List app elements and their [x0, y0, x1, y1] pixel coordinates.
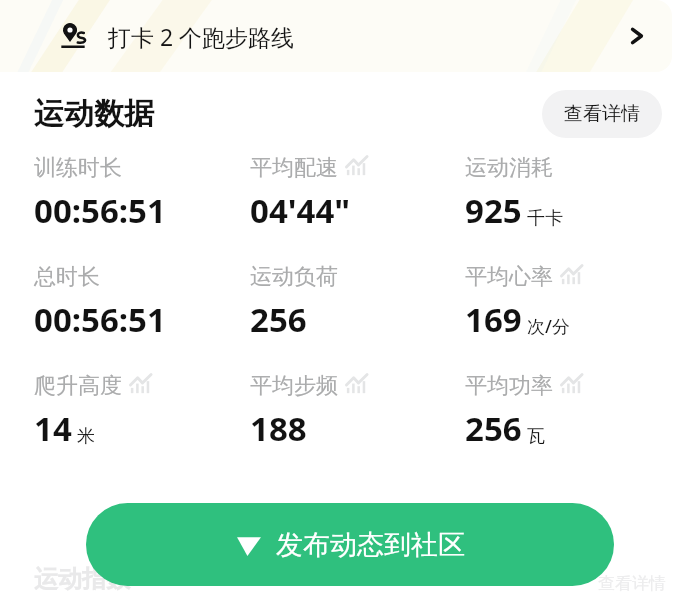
staticText: 925 [465, 188, 522, 233]
button[interactable]: 训练时长 [34, 154, 166, 233]
button[interactable]: 平均心率 [465, 263, 584, 342]
staticText: 爬升高度 [34, 372, 122, 400]
button[interactable]: 运动负荷 [250, 263, 338, 342]
staticText: 14 [34, 406, 72, 451]
staticText: 平均步频 [250, 372, 338, 400]
staticText: 平均心率 [465, 263, 553, 291]
button[interactable]: 总时长 [34, 263, 166, 342]
button[interactable]: Route [0, 0, 672, 72]
staticText: 发布动态到社区 [276, 528, 465, 562]
staticText: 千卡 [527, 207, 563, 230]
button[interactable]: 爬升高度 [34, 372, 153, 451]
other: Publish [236, 532, 262, 558]
button[interactable]: 平均步频 [250, 372, 369, 451]
other: Route [58, 21, 88, 51]
staticText: 00:56:51 [34, 188, 166, 233]
staticText: 次/分 [527, 314, 570, 339]
staticText: 米 [77, 425, 95, 448]
other: Open routes [626, 25, 648, 47]
staticText: 256 [250, 297, 307, 342]
staticText: 169 [465, 297, 522, 342]
staticText: 188 [250, 406, 307, 451]
button[interactable]: Publish [86, 503, 614, 586]
staticText: 平均功率 [465, 372, 553, 400]
staticText: 运动负荷 [250, 263, 338, 291]
staticText: 训练时长 [34, 154, 122, 182]
button[interactable]: 运动消耗 [465, 154, 563, 233]
button[interactable]: 查看详情 [542, 90, 662, 138]
button[interactable]: 平均功率 [465, 372, 584, 451]
staticText: 总时长 [34, 263, 100, 291]
staticText: 运动指数 [34, 564, 130, 594]
staticText: 查看详情 [564, 102, 640, 126]
staticText: 瓦 [527, 425, 545, 448]
staticText: 256 [465, 406, 522, 451]
staticText: 运动消耗 [465, 154, 553, 182]
staticText: 打卡 2 个跑步路线 [108, 21, 295, 52]
staticText: 04'44" [250, 188, 351, 233]
staticText: 查看详情 [598, 573, 666, 594]
staticText: 运动数据 [34, 95, 154, 133]
staticText: 00:56:51 [34, 297, 166, 342]
button[interactable]: 平均配速 [250, 154, 369, 233]
staticText: 平均配速 [250, 154, 338, 182]
